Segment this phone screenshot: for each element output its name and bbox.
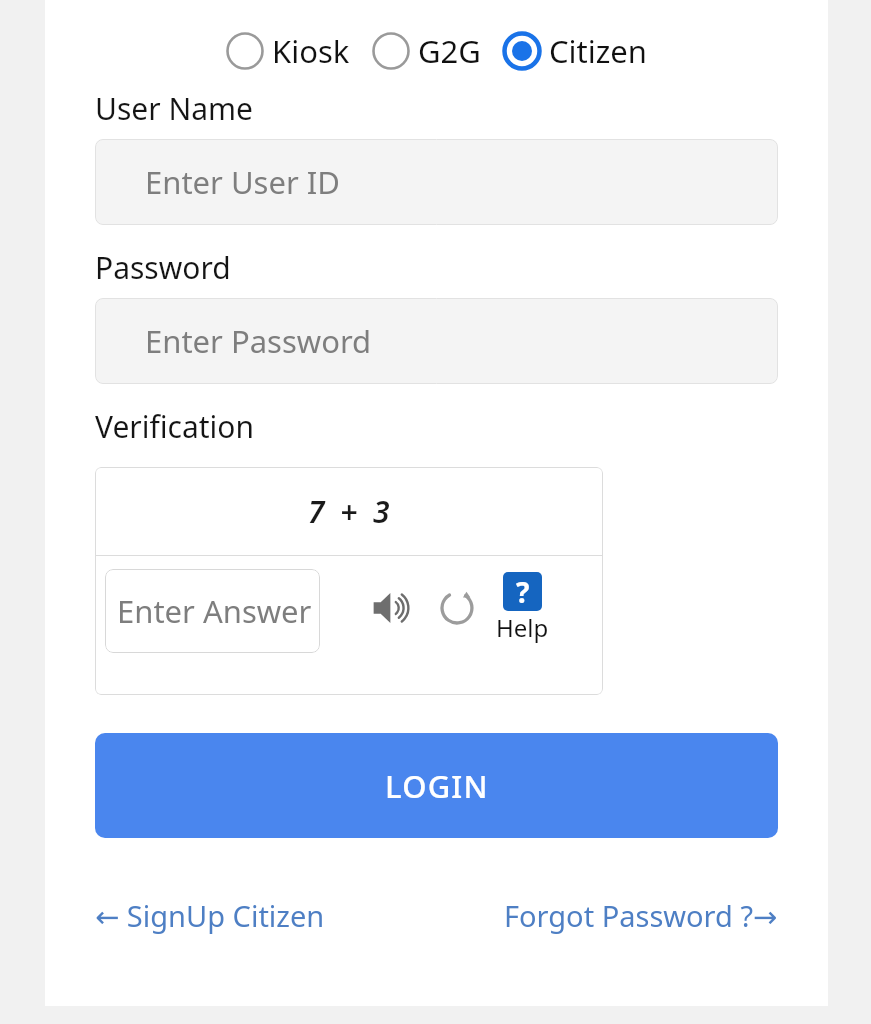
button[interactable]: Citizen	[503, 30, 647, 72]
button[interactable]: Enter Password	[95, 298, 778, 384]
staticText: 7 + 3	[308, 491, 390, 532]
staticText: Enter Password	[145, 320, 372, 362]
staticText: G2G	[418, 30, 481, 72]
staticText: Enter User ID	[145, 161, 340, 203]
staticText: ?	[516, 573, 530, 611]
staticText: Kiosk	[272, 30, 350, 72]
button[interactable]: Refresh captcha	[432, 583, 482, 633]
button[interactable]: Play audio captcha	[368, 583, 418, 633]
staticText: User Name	[95, 88, 254, 129]
button[interactable]: Enter Answer	[105, 569, 320, 653]
staticText: Help	[496, 611, 549, 644]
staticText: Password	[95, 247, 231, 288]
staticText: Forgot Password ?→	[504, 896, 778, 935]
button[interactable]: ?	[496, 572, 549, 644]
staticText: Verification	[95, 406, 254, 447]
button[interactable]: LOGIN	[95, 733, 778, 838]
staticText: LOGIN	[385, 765, 489, 807]
staticText: Citizen	[549, 30, 647, 72]
button[interactable]: Forgot Password ?→	[504, 896, 778, 935]
button[interactable]: Enter User ID	[95, 139, 778, 225]
button[interactable]: ← SignUp Citizen	[95, 896, 325, 935]
staticText: Enter Answer	[117, 590, 312, 632]
button[interactable]: Kiosk	[226, 30, 350, 72]
button[interactable]: G2G	[372, 30, 481, 72]
staticText: ← SignUp Citizen	[95, 896, 325, 935]
